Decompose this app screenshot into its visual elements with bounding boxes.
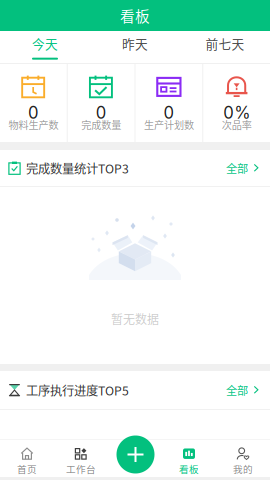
button[interactable]: 前七天 [180,31,270,63]
staticText: 全部 [226,160,248,176]
staticText: 0 [163,103,174,123]
button[interactable]: 新建 [113,432,157,476]
staticText: 物料生产数 [8,117,58,132]
staticText: 工作台 [66,462,96,476]
button[interactable]: 0% [203,64,270,142]
button[interactable]: 首页 [0,440,54,477]
staticText: 今天 [32,34,58,53]
button[interactable]: 0 [68,64,135,142]
staticText: 看板 [179,462,199,476]
staticText: 昨天 [122,34,148,53]
staticText: 0% [223,103,250,123]
staticText: 0 [28,103,39,123]
staticText: 看板 [120,5,150,26]
button[interactable]: 0 [135,64,202,142]
staticText: 完成数量 [81,117,121,132]
staticText: 首页 [17,462,37,476]
button[interactable]: 看板 [162,440,216,477]
button[interactable]: 全部 [216,376,259,404]
staticText: 我的 [233,462,253,476]
button[interactable]: 全部 [216,154,259,182]
button[interactable]: 昨天 [90,31,180,63]
staticText: 0 [96,103,107,123]
staticText: 次品率 [222,117,252,132]
button[interactable]: 工作台 [54,440,108,477]
staticText: 全部 [226,382,248,398]
button[interactable]: 我的 [216,440,270,477]
staticText: 暂无数据 [111,310,159,327]
staticText: 前七天 [205,34,244,53]
staticText: 完成数量统计TOP3 [26,159,129,177]
button[interactable]: 今天 [0,31,90,63]
staticText: 生产计划数 [144,117,194,132]
button[interactable]: 0 [0,64,67,142]
staticText: 工序执行进度TOP5 [26,381,129,399]
